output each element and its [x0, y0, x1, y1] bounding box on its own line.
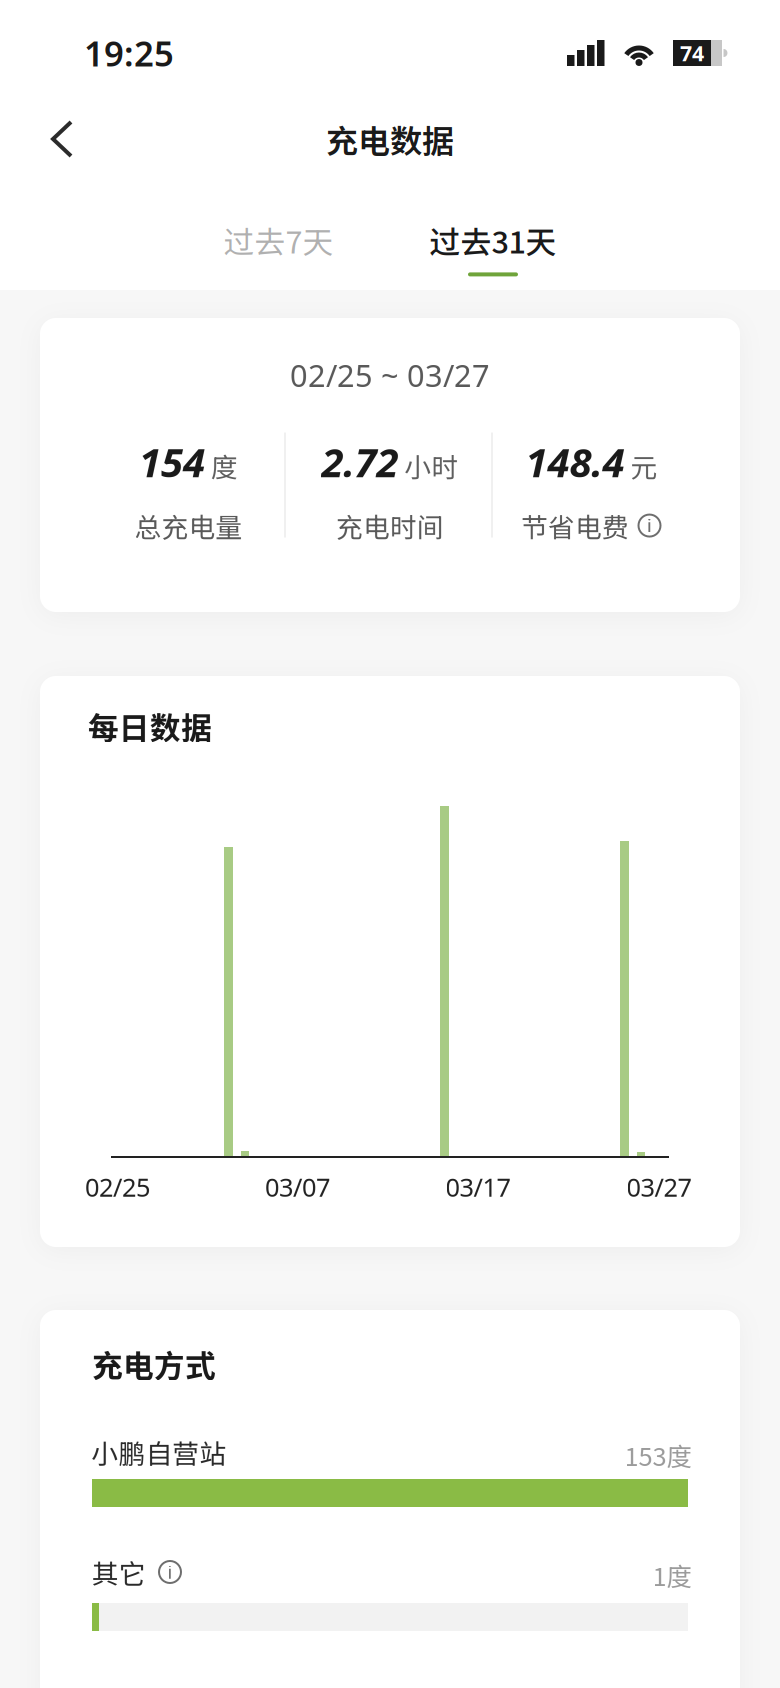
button[interactable]: Back: [0, 110, 73, 168]
staticText: 02/25 ~ 03/27: [290, 355, 490, 395]
staticText: 小鹏自营站: [91, 1433, 226, 1471]
staticText: 充电时间: [336, 506, 444, 545]
staticText: 03/17: [445, 1170, 510, 1204]
button[interactable]: 过去31天: [429, 218, 556, 276]
staticText: 过去7天: [223, 218, 333, 262]
staticText: 过去31天: [429, 218, 556, 262]
staticText: 154: [139, 435, 205, 488]
staticText: 度: [211, 446, 238, 485]
button[interactable]: 过去7天: [223, 218, 333, 262]
staticText: 1度: [652, 1557, 691, 1593]
staticText: 节省电费: [521, 506, 629, 545]
staticText: 元: [630, 446, 657, 485]
staticText: 74: [680, 39, 704, 67]
staticText: 19:25: [84, 30, 174, 76]
staticText: 充电数据: [326, 116, 454, 162]
staticText: 充电方式: [92, 1342, 216, 1386]
staticText: i: [167, 1560, 172, 1583]
staticText: 2.72: [321, 435, 398, 488]
button[interactable]: 节省电费说明: [637, 513, 662, 538]
button[interactable]: 其它说明: [157, 1559, 182, 1584]
staticText: 02/25: [85, 1170, 150, 1204]
staticText: 总充电量: [134, 506, 242, 545]
staticText: 其它: [92, 1553, 146, 1591]
staticText: 小时: [404, 446, 458, 485]
staticText: 148.4: [525, 435, 624, 488]
staticText: 03/07: [265, 1170, 330, 1204]
staticText: i: [647, 514, 652, 537]
staticText: 153度: [624, 1437, 691, 1473]
staticText: 03/27: [626, 1170, 691, 1204]
staticText: 每日数据: [88, 704, 212, 748]
